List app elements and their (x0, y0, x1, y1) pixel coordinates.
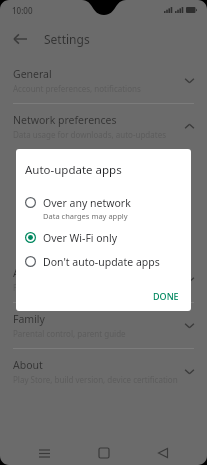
staticText: 10:00 (12, 5, 33, 16)
staticText: Over any network (43, 196, 131, 210)
button[interactable]: Don't auto-update apps (16, 250, 191, 274)
button[interactable]: DONE (141, 286, 191, 306)
staticText: General (13, 67, 52, 81)
staticText: Don't auto-update apps (43, 255, 160, 269)
button[interactable]: Authentication (0, 257, 207, 302)
staticText: Authentication (13, 266, 86, 280)
staticText: DONE (153, 290, 179, 302)
staticText: Data charges may apply (43, 211, 128, 221)
button[interactable]: Home (89, 441, 119, 465)
button[interactable]: Back (6, 25, 34, 53)
button[interactable]: Over any network (16, 191, 191, 226)
staticText: Account preferences, notifications (13, 83, 141, 94)
staticText: Auto-update apps (25, 162, 122, 178)
staticText: About (13, 358, 43, 372)
button[interactable]: Network preferences (0, 104, 207, 149)
button[interactable]: Recent apps (29, 441, 59, 465)
staticText: Family (13, 312, 45, 326)
staticText: Parental control, parent guide (13, 328, 126, 339)
staticText: Data usage for downloads, auto-updates (13, 129, 166, 140)
staticText: Play Store, build version, device certif… (13, 374, 178, 385)
staticText: Settings (44, 31, 90, 47)
button[interactable]: Family (0, 303, 207, 348)
button[interactable]: About (0, 349, 207, 394)
button[interactable]: Back (148, 441, 178, 465)
staticText: Over Wi-Fi only (43, 231, 118, 245)
button[interactable]: Over Wi-Fi only (16, 226, 191, 250)
staticText: Network preferences (13, 113, 117, 127)
staticText: Fingerprint, purchase authentication (13, 282, 151, 293)
button[interactable]: General (0, 58, 207, 103)
